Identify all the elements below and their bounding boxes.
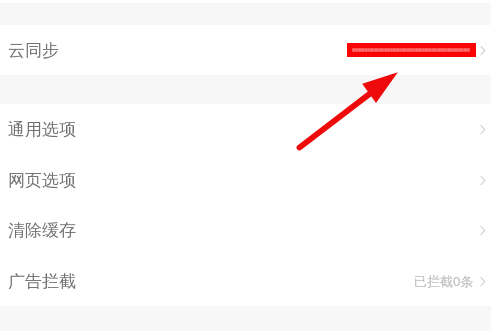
staticText: 已拦截0条 <box>414 272 474 290</box>
button[interactable]: 网页选项 <box>0 155 491 205</box>
button[interactable]: 云同步 <box>0 25 491 75</box>
staticText: 广告拦截 <box>8 271 76 292</box>
staticText: 通用选项 <box>8 119 76 140</box>
button[interactable]: 广告拦截 <box>0 256 491 306</box>
staticText: 云同步 <box>8 40 59 61</box>
staticText: 清除缓存 <box>8 220 76 241</box>
staticText: 网页选项 <box>8 170 76 191</box>
button[interactable]: 通用选项 <box>0 104 491 155</box>
button[interactable]: 清除缓存 <box>0 205 491 256</box>
